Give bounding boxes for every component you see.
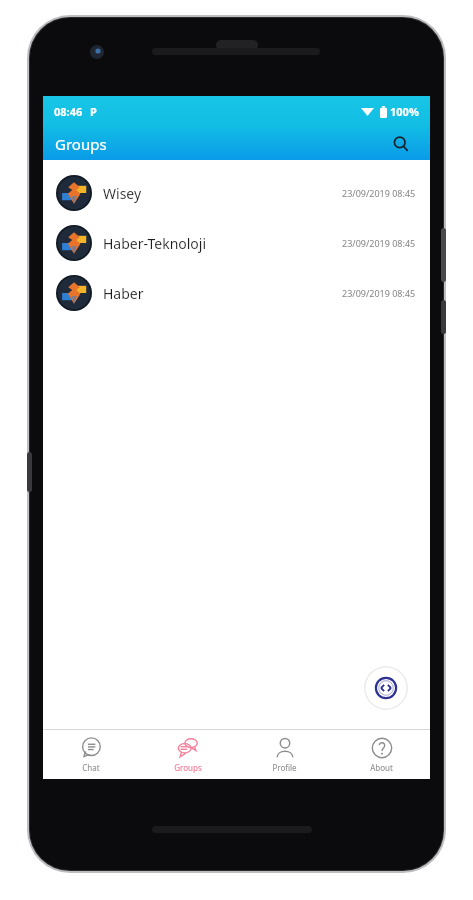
staticText: Profile bbox=[272, 762, 297, 773]
staticText: P bbox=[90, 104, 97, 119]
button[interactable]: Profile bbox=[236, 730, 333, 779]
button[interactable]: Groups bbox=[139, 730, 236, 779]
button[interactable]: Wisey bbox=[43, 168, 430, 218]
button[interactable]: Haber-Teknoloji bbox=[43, 218, 430, 268]
staticText: 23/09/2019 08:45 bbox=[342, 237, 416, 249]
staticText: Haber bbox=[103, 284, 144, 303]
button[interactable]: About bbox=[333, 730, 430, 779]
staticText: 08:46 bbox=[54, 104, 83, 119]
staticText: 100% bbox=[390, 104, 419, 119]
staticText: About bbox=[370, 762, 393, 773]
button[interactable]: Developer options bbox=[363, 665, 409, 711]
staticText: Groups bbox=[55, 134, 107, 154]
staticText: Haber-Teknoloji bbox=[103, 234, 207, 253]
staticText: 23/09/2019 08:45 bbox=[342, 187, 416, 199]
button[interactable]: Search bbox=[386, 129, 416, 159]
staticText: Wisey bbox=[103, 184, 142, 203]
staticText: Groups bbox=[174, 762, 202, 773]
button[interactable]: Haber bbox=[43, 268, 430, 318]
button[interactable]: Chat bbox=[43, 730, 139, 779]
staticText: 23/09/2019 08:45 bbox=[342, 287, 416, 299]
staticText: Chat bbox=[82, 762, 100, 773]
